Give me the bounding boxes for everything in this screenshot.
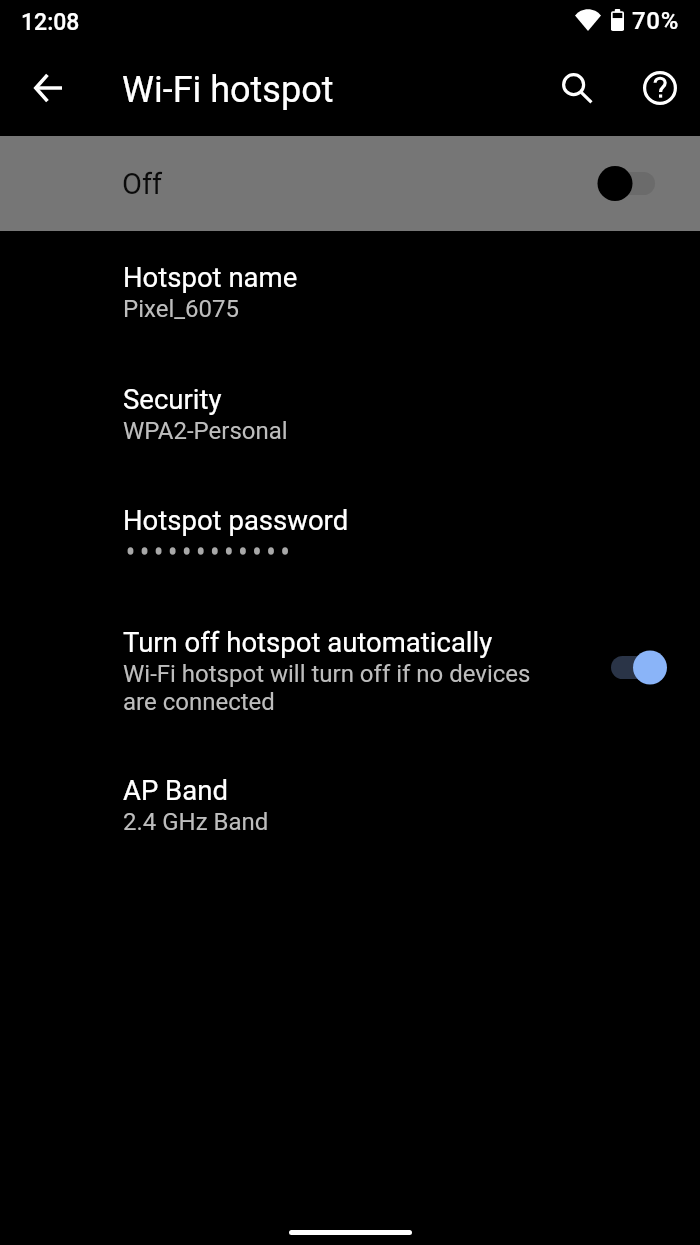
button[interactable]: Hotspot password: [0, 490, 700, 571]
staticText: AP Band: [123, 774, 228, 806]
button[interactable]: Turn off hotspot automatically: [0, 612, 700, 730]
button[interactable]: AP Band: [0, 760, 700, 850]
staticText: 2.4 GHz Band: [123, 808, 269, 836]
staticText: 70%: [632, 7, 680, 35]
staticText: Wi-Fi hotspot: [122, 69, 334, 111]
staticText: Turn off hotspot automatically: [123, 626, 493, 658]
staticText: Security: [123, 383, 222, 415]
button[interactable]: Security: [0, 369, 700, 459]
staticText: Pixel_6075: [123, 295, 239, 323]
staticText: 12:08: [21, 9, 80, 36]
staticText: Hotspot password: [123, 504, 349, 536]
button[interactable]: Search: [549, 60, 606, 117]
button[interactable]: Turn off hotspot automatically toggle: [610, 650, 668, 685]
staticText: Hotspot name: [123, 261, 298, 293]
button[interactable]: Help: [631, 59, 688, 116]
button[interactable]: Back: [19, 59, 77, 117]
staticText: WPA2-Personal: [123, 417, 288, 445]
button[interactable]: Hotspot name: [0, 247, 700, 337]
staticText: Wi-Fi hotspot will turn off if no device…: [123, 660, 543, 716]
staticText: Off: [122, 167, 163, 201]
button[interactable]: Off: [0, 136, 700, 231]
button[interactable]: Use Wi-Fi hotspot: [597, 166, 658, 201]
